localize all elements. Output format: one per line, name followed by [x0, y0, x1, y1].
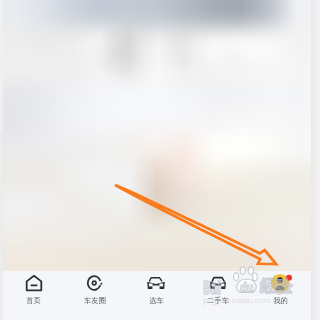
staticText: jingyan.baidu.com — [203, 295, 271, 306]
button[interactable]: 我的 — [249, 271, 311, 320]
staticText: 经验 — [260, 277, 292, 297]
staticText: 二手车 — [207, 296, 229, 305]
button[interactable]: 二手车 — [187, 271, 249, 320]
staticText: Bai — [203, 275, 221, 299]
button[interactable]: 首页 — [3, 271, 64, 320]
staticText: 选车 — [149, 296, 164, 305]
button[interactable]: 车友圈 — [64, 271, 125, 320]
staticText: 车友圈 — [84, 296, 106, 305]
button[interactable]: 选车 — [125, 271, 187, 320]
staticText: 我的 — [273, 296, 288, 305]
staticText: 首页 — [26, 296, 41, 305]
staticText: du — [240, 279, 254, 296]
